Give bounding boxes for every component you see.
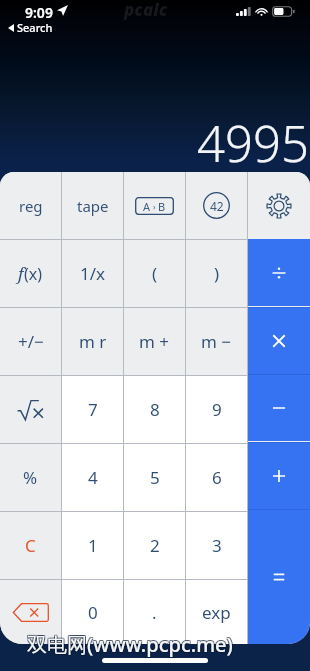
staticText: f (18, 262, 24, 285)
button[interactable]: m + (124, 308, 185, 375)
staticText: 双电网(www.pcpc.me) (26, 630, 232, 657)
button[interactable]: m − (186, 308, 247, 375)
button[interactable]: reg (0, 172, 61, 239)
staticText: reg (19, 196, 43, 216)
staticText: 1 (88, 534, 98, 557)
staticText: +/− (18, 330, 44, 353)
staticText: 8 (150, 398, 160, 421)
button[interactable]: 2 (124, 512, 185, 579)
staticText: 双电网(www.pcpc.me) (26, 631, 232, 658)
staticText: 双电网(www.pcpc.me) (28, 632, 234, 659)
button[interactable]: Settings (248, 172, 310, 239)
button[interactable]: Plus (248, 442, 310, 509)
button[interactable]: exp (186, 580, 247, 644)
button[interactable]: 6 (186, 444, 247, 511)
button[interactable]: Multiply (248, 307, 310, 374)
button[interactable]: +/− (0, 308, 61, 375)
staticText: pcalc (124, 0, 168, 21)
button[interactable]: 1/x (62, 240, 123, 307)
staticText: tape (77, 196, 109, 216)
button[interactable] (0, 376, 61, 443)
button[interactable]: 7 (62, 376, 123, 443)
button[interactable]: 1 (62, 512, 123, 579)
button[interactable]: 0 (62, 580, 123, 644)
staticText: › (151, 201, 158, 212)
button[interactable]: Divide (248, 239, 310, 306)
staticText: 2 (150, 534, 160, 557)
staticText: 6 (212, 466, 222, 489)
staticText: m r (79, 330, 107, 353)
button[interactable]: 4 (62, 444, 123, 511)
other: Backspace (12, 603, 49, 622)
staticText: 5 (150, 466, 160, 489)
staticText: 3 (212, 534, 222, 557)
staticText: Search (17, 20, 53, 35)
button[interactable]: f (0, 240, 61, 307)
staticText: % (23, 466, 38, 489)
button[interactable]: 9 (186, 376, 247, 443)
staticText: ( (152, 262, 158, 285)
staticText: 42 (210, 198, 224, 214)
button[interactable]: Base 42 (186, 172, 247, 239)
staticText: m − (201, 330, 232, 353)
button[interactable]: Search (8, 20, 53, 35)
staticText: 双电网(www.pcpc.me) (26, 632, 232, 659)
button[interactable]: 8 (124, 376, 185, 443)
staticText: 双电网(www.pcpc.me) (27, 630, 233, 657)
button[interactable]: . (124, 580, 185, 644)
staticText: 0 (88, 601, 98, 624)
staticText: 1/x (80, 262, 106, 285)
button[interactable]: ) (186, 240, 247, 307)
button[interactable]: ( (124, 240, 185, 307)
staticText: 双电网(www.pcpc.me) (27, 631, 233, 658)
button[interactable]: Minus (248, 374, 310, 441)
button[interactable]: C (0, 512, 61, 579)
button[interactable]: 5 (124, 444, 185, 511)
staticText: A (143, 199, 151, 214)
staticText: 双电网(www.pcpc.me) (28, 630, 234, 657)
staticText: 9 (212, 398, 222, 421)
staticText: exp (202, 601, 231, 624)
staticText: 9:09 (25, 3, 53, 22)
staticText: . (152, 601, 157, 624)
staticText: C (25, 534, 36, 557)
staticText: (x) (24, 263, 43, 285)
staticText: m + (139, 330, 170, 353)
button[interactable]: tape (62, 172, 123, 239)
button[interactable]: 3 (186, 512, 247, 579)
staticText: 双电网(www.pcpc.me) (27, 632, 233, 659)
button[interactable]: m r (62, 308, 123, 375)
staticText: 双电网(www.pcpc.me) (28, 631, 234, 658)
staticText: 4995 (0, 110, 309, 177)
button[interactable]: Convert A to B (124, 172, 185, 239)
button[interactable]: Equals (248, 509, 310, 644)
staticText: 7 (88, 398, 98, 421)
button[interactable]: % (0, 444, 61, 511)
staticText: ) (214, 262, 220, 285)
button[interactable]: Backspace (0, 580, 61, 644)
staticText: 4 (88, 466, 98, 489)
staticText: B (158, 199, 166, 214)
